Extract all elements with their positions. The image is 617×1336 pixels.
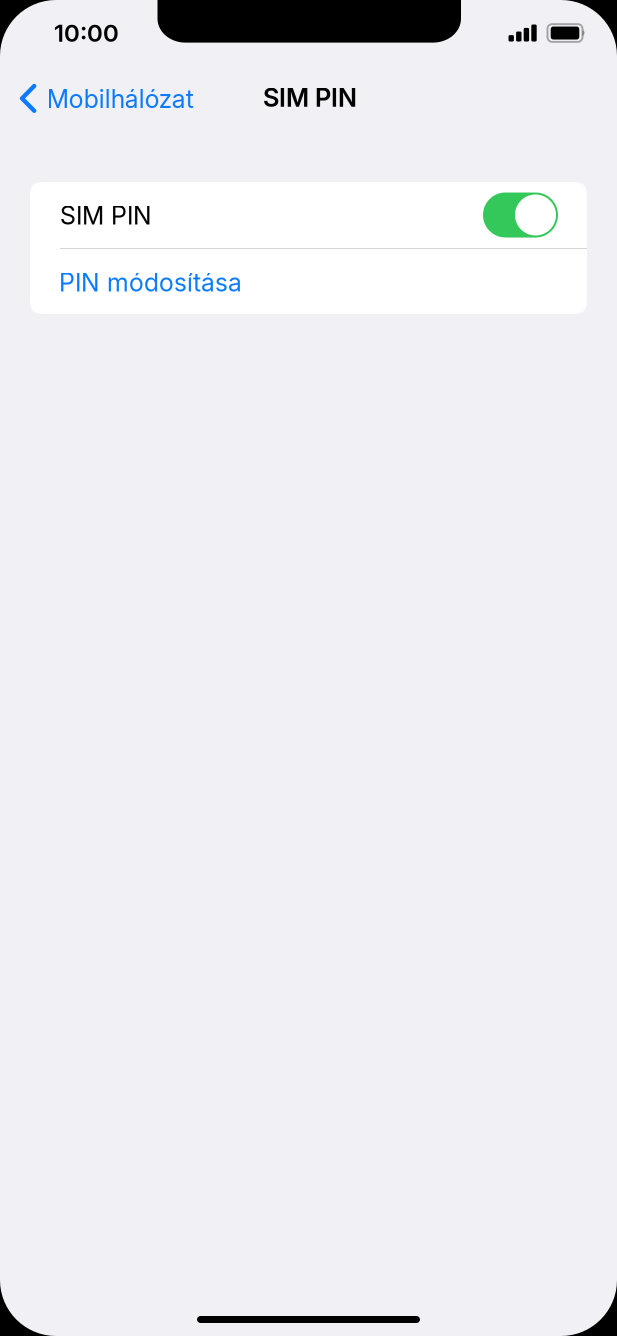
staticText: PIN módosítása — [59, 267, 242, 298]
staticText: SIM PIN — [60, 200, 152, 231]
staticText: Mobilhálózat — [47, 84, 194, 114]
button[interactable]: SIM PIN — [30, 182, 587, 248]
staticText: SIM PIN — [263, 82, 357, 113]
button[interactable]: PIN módosítása — [30, 249, 587, 314]
staticText: 10:00 — [54, 18, 119, 47]
button[interactable]: Mobilhálózat — [0, 71, 206, 119]
